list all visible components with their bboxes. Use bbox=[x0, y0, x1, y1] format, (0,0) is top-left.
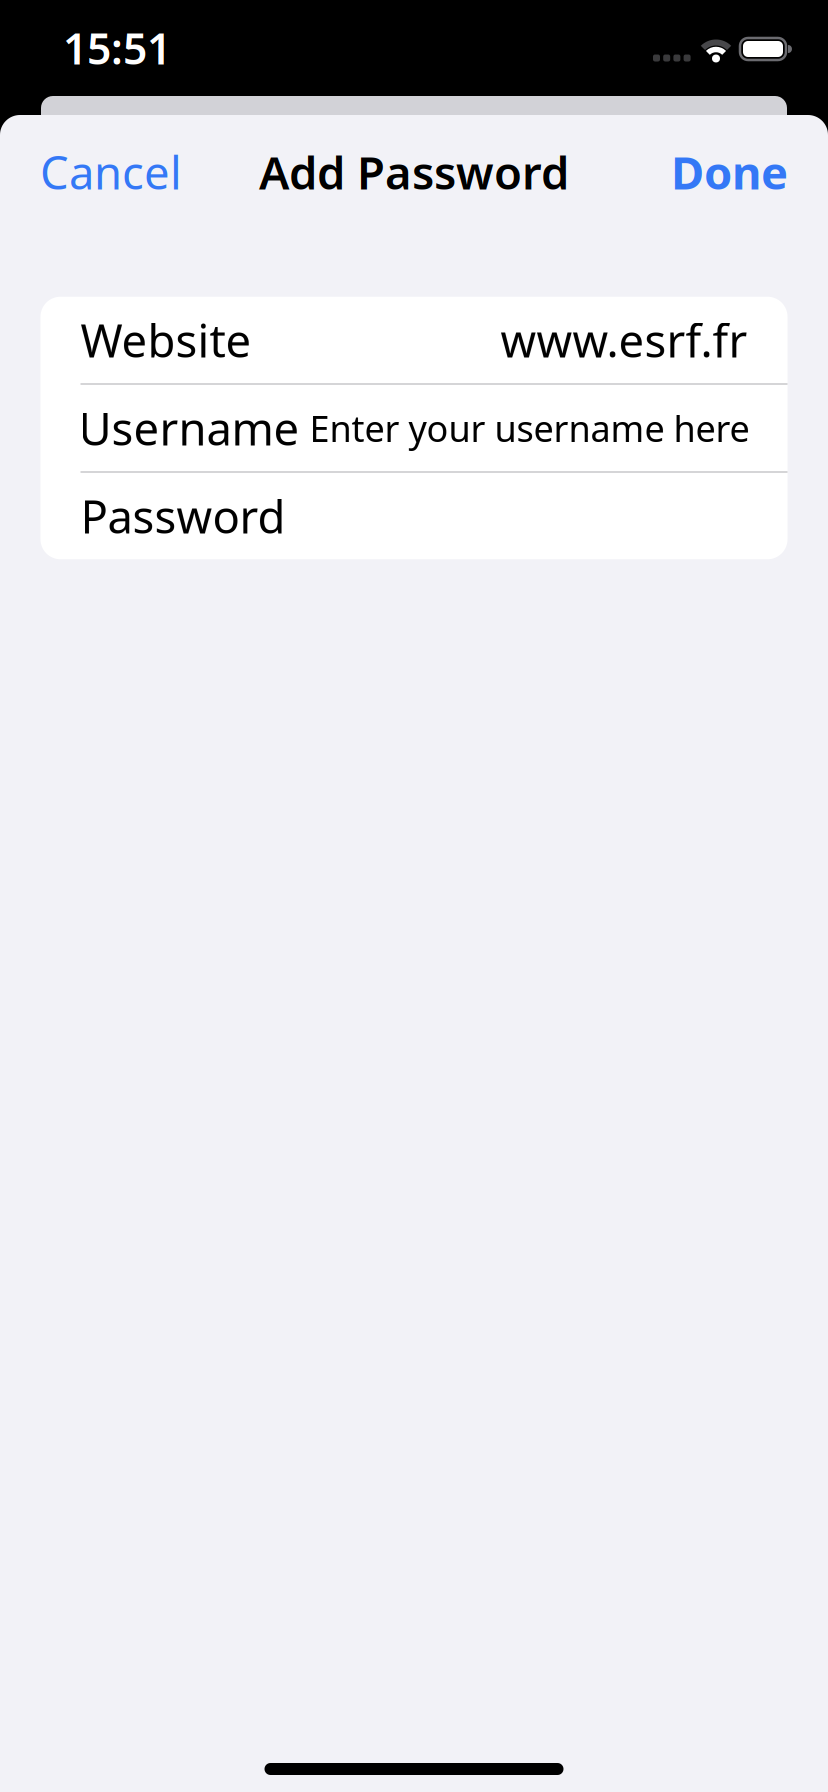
staticText: Cancel bbox=[40, 142, 182, 202]
staticText: Enter your username here bbox=[309, 404, 749, 452]
staticText: Done bbox=[671, 142, 788, 202]
staticText: Password bbox=[80, 486, 285, 546]
staticText: Add Password bbox=[259, 142, 569, 202]
staticText: www.esrf.fr bbox=[500, 310, 747, 370]
staticText: Username bbox=[78, 398, 299, 458]
staticText: Website bbox=[80, 310, 251, 370]
button[interactable]: Done bbox=[671, 142, 788, 202]
staticText: 15:51 bbox=[63, 20, 171, 76]
button[interactable]: Cancel bbox=[40, 142, 182, 202]
button[interactable]: Password bbox=[40, 473, 787, 559]
button[interactable]: Website bbox=[40, 297, 787, 383]
button[interactable]: Username bbox=[38, 385, 789, 471]
